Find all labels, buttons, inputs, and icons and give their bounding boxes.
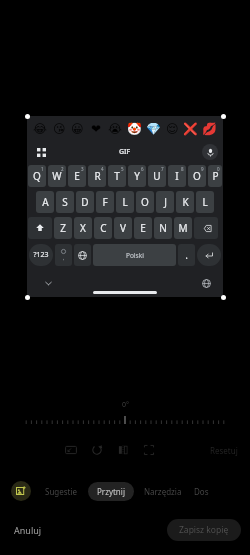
button[interactable]: X	[74, 217, 92, 239]
button[interactable]: Flip	[112, 439, 134, 461]
button[interactable]: U	[148, 165, 166, 187]
button[interactable]: M	[174, 217, 192, 239]
button[interactable]: E	[134, 217, 152, 239]
button[interactable]: W	[48, 165, 66, 187]
staticText: 7	[161, 166, 164, 172]
button[interactable]: ?123	[29, 244, 53, 266]
staticText: 8	[181, 166, 184, 172]
button[interactable]: Voice input	[202, 144, 218, 160]
staticText: O	[141, 195, 149, 209]
button[interactable]: ❤️	[88, 120, 105, 137]
button[interactable]: Apps	[33, 144, 49, 160]
button[interactable]: Y	[128, 165, 146, 187]
staticText: 😭	[108, 122, 123, 136]
button[interactable]: 😀	[69, 120, 86, 137]
button[interactable]: Perspective	[138, 439, 160, 461]
staticText: R	[94, 169, 101, 183]
button[interactable]: Aspect ratio	[60, 439, 82, 461]
button[interactable]: S	[56, 191, 74, 213]
staticText: 2	[61, 166, 64, 172]
staticText: F	[102, 195, 108, 209]
button[interactable]: 😭	[107, 120, 124, 137]
button[interactable]: O	[188, 165, 206, 187]
button[interactable]: Sugestie	[43, 482, 80, 501]
button[interactable]: Narzędzia	[142, 482, 184, 501]
staticText: Polski	[126, 251, 144, 260]
staticText: K	[182, 195, 189, 209]
button[interactable]: Q	[28, 165, 46, 187]
staticText: Q	[33, 169, 41, 183]
button[interactable]: 😂	[32, 120, 49, 137]
button[interactable]: Anuluj	[8, 520, 48, 540]
button[interactable]: 💎	[145, 120, 162, 137]
button[interactable]: T	[108, 165, 126, 187]
button[interactable]: I	[168, 165, 186, 187]
button[interactable]: Rotate	[86, 439, 108, 461]
button[interactable]: 🤡	[126, 120, 143, 137]
button[interactable]: K	[176, 191, 194, 213]
button[interactable]: L	[116, 191, 134, 213]
button[interactable]: C	[94, 217, 112, 239]
button[interactable]: A	[36, 191, 54, 213]
staticText: ❤️	[91, 122, 102, 136]
button[interactable]: 💋	[201, 120, 218, 137]
button[interactable]: 😘	[51, 120, 68, 137]
staticText: .	[185, 248, 188, 262]
button[interactable]: Zapisz kopię	[167, 519, 241, 541]
button[interactable]: N	[154, 217, 172, 239]
staticText: Zapisz kopię	[179, 524, 229, 536]
staticText: 0	[217, 166, 220, 172]
staticText: E	[140, 221, 146, 235]
button[interactable]: E	[68, 165, 86, 187]
staticText: N	[159, 221, 167, 235]
staticText: 3	[81, 166, 84, 172]
button[interactable]: Polski	[93, 244, 176, 266]
staticText: Dos	[194, 486, 209, 497]
button[interactable]: V	[114, 217, 132, 239]
staticText: D	[81, 195, 89, 209]
staticText: 😌	[166, 122, 179, 136]
button[interactable]: ❌	[182, 120, 199, 137]
button[interactable]: F	[96, 191, 114, 213]
button[interactable]: Change language	[74, 244, 91, 266]
staticText: Narzędzia	[144, 486, 182, 497]
staticText: J	[164, 195, 167, 209]
staticText: 1	[41, 166, 44, 172]
staticText: 😂	[33, 122, 48, 136]
button[interactable]: O	[136, 191, 154, 213]
staticText: P	[212, 169, 219, 183]
staticText: 😘	[53, 122, 66, 136]
staticText: W	[52, 169, 62, 183]
staticText: Anuluj	[14, 524, 42, 536]
button[interactable]: Przytnij	[88, 482, 134, 501]
staticText: L	[202, 195, 208, 209]
staticText: Przytnij	[97, 486, 125, 497]
staticText: 💋	[202, 122, 217, 136]
button[interactable]: R	[88, 165, 106, 187]
button[interactable]: Language settings	[199, 276, 213, 290]
staticText: GIF	[119, 147, 131, 157]
button[interactable]: P	[208, 165, 222, 187]
button[interactable]: L	[196, 191, 214, 213]
button[interactable]: 😌	[164, 120, 181, 137]
button[interactable]: D	[76, 191, 94, 213]
button[interactable]: Magic editor	[11, 481, 31, 501]
button[interactable]: Shift	[28, 217, 52, 239]
button[interactable]: Emoji	[55, 244, 72, 266]
button[interactable]: .	[178, 244, 195, 266]
staticText: T	[114, 169, 120, 183]
button[interactable]: J	[156, 191, 174, 213]
staticText: A	[42, 195, 49, 209]
staticText: 💎	[146, 122, 161, 136]
button[interactable]: Resetuj	[204, 442, 244, 459]
button[interactable]: Z	[54, 217, 72, 239]
button[interactable]: Dos	[192, 482, 211, 501]
staticText: M	[178, 221, 188, 235]
staticText: 🤡	[127, 122, 142, 136]
staticText: ,	[63, 255, 65, 262]
button[interactable]: Backspace	[194, 217, 218, 239]
staticText: L	[122, 195, 128, 209]
staticText: 5	[121, 166, 124, 172]
button[interactable]: Enter	[197, 244, 221, 266]
button[interactable]: Hide keyboard	[41, 276, 55, 290]
